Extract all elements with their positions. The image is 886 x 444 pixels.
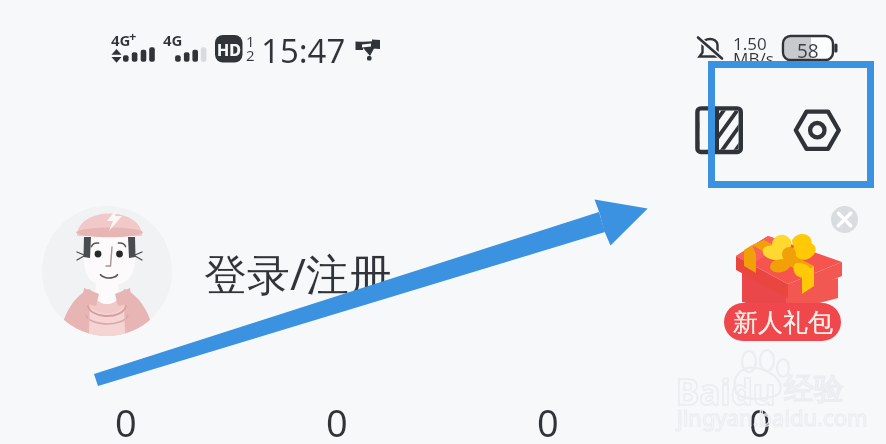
staticText: Baidu (676, 368, 776, 416)
staticText: 58 (797, 38, 819, 64)
staticText: 经验 (784, 370, 844, 408)
staticText: 2 (246, 45, 255, 65)
staticText: 4G (111, 30, 131, 50)
button[interactable]: 新人礼包 (724, 303, 841, 341)
button[interactable]: Close (831, 206, 858, 233)
staticText: 新人礼包 (733, 307, 833, 338)
staticText: 1.50 (733, 32, 767, 55)
staticText: MB/s (733, 47, 774, 70)
button[interactable]: Membership card (690, 100, 748, 158)
staticText: 0 (115, 396, 137, 440)
button[interactable]: 0 (20, 396, 231, 440)
button[interactable]: 0 (442, 396, 654, 440)
button[interactable]: 0 (231, 396, 442, 440)
button[interactable]: Settings (787, 100, 847, 160)
staticText: HD (217, 39, 241, 61)
staticText: 登录/注册 (204, 244, 392, 303)
button[interactable]: 0 (654, 396, 866, 440)
staticText: 0 (749, 396, 771, 440)
staticText: 0 (537, 396, 559, 440)
button[interactable]: 登录/注册 (32, 200, 422, 342)
button[interactable] (706, 200, 886, 346)
staticText: 0 (326, 396, 348, 440)
staticText: 4G (163, 30, 183, 50)
staticText: jingyan.baidu.com (677, 402, 868, 432)
staticText: 15:47 (261, 28, 346, 73)
staticText: 1 (246, 31, 255, 51)
staticText: + (129, 27, 137, 45)
